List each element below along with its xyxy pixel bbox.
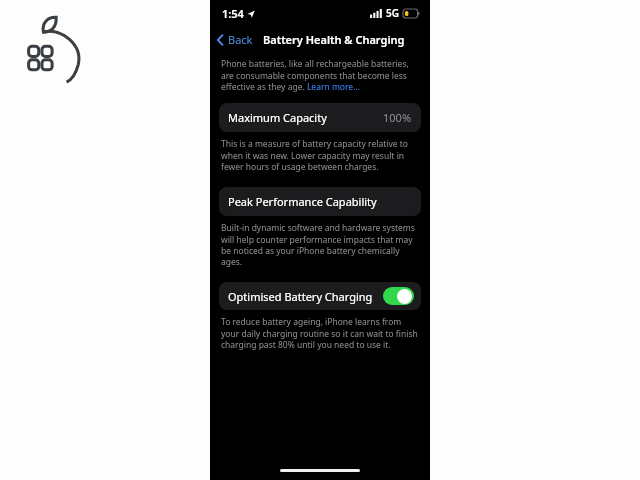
button[interactable]: Phone batteries, like all rechargeable b… [221,58,419,93]
button[interactable]: Maximum Capacity [219,103,421,132]
staticText: Optimised Battery Charging [228,289,373,304]
staticText: To reduce battery ageing, iPhone learns … [221,316,419,351]
staticText: Maximum Capacity [228,110,327,125]
staticText: Battery Health & Charging [263,32,405,47]
staticText: 100% [383,110,412,125]
button[interactable]: Peak Performance Capability [219,187,421,216]
button[interactable]: Back [210,29,259,50]
staticText: This is a measure of battery capacity re… [221,138,419,173]
other: App logo [26,16,84,82]
staticText: 1:54 [222,6,244,21]
staticText: Back [228,32,253,47]
staticText: 5G [386,6,399,20]
button[interactable]: Optimised Battery Charging [219,282,421,310]
button[interactable]: Optimised Battery Charging toggle, on [383,287,414,305]
staticText: Peak Performance Capability [228,194,377,209]
staticText: Built-in dynamic software and hardware s… [221,222,419,268]
